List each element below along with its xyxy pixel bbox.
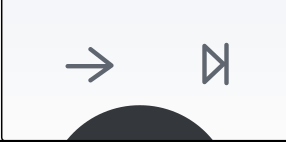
button[interactable]: Record: [46, 105, 234, 142]
button[interactable]: Skip to end: [201, 42, 235, 88]
button[interactable]: Next: [61, 44, 117, 88]
